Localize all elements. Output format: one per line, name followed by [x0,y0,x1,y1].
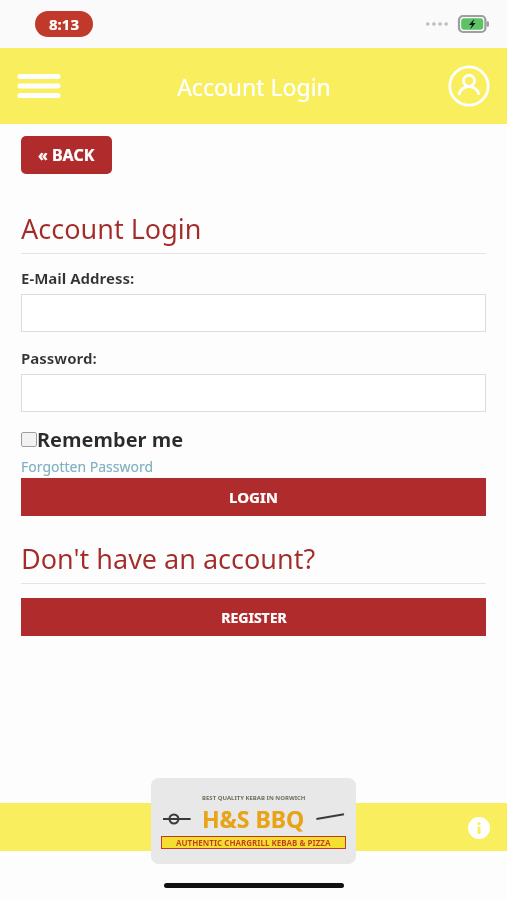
staticText: BEST QUALITY KEBAB IN NORWICH [202,794,306,802]
staticText: « BACK [38,144,95,166]
staticText: Password: [21,348,97,368]
button[interactable]: REGISTER [21,598,486,636]
button[interactable]: Info [467,816,491,840]
staticText: Account Login [21,210,202,247]
staticText: AUTHENTIC CHARGRILL KEBAB & PIZZA [176,837,331,848]
button[interactable]: Menu [14,61,64,111]
button[interactable] [21,374,486,412]
staticText: H&S BBQ [202,803,305,834]
button[interactable]: « BACK [21,136,112,174]
staticText: Remember me [37,426,184,453]
button[interactable] [21,294,486,332]
staticText: Account Login [177,71,331,102]
staticText: LOGIN [229,487,278,507]
staticText: 8:13 [49,14,79,34]
button[interactable]: LOGIN [21,478,486,516]
button[interactable]: Account [445,62,493,110]
button[interactable]: Forgotten Password [21,457,154,476]
staticText: REGISTER [221,608,287,627]
button[interactable]: Remember me [21,426,184,453]
button[interactable]: BEST QUALITY KEBAB IN NORWICH [151,778,356,864]
staticText: E-Mail Address: [21,268,135,288]
staticText: Don't have an account? [21,540,316,577]
